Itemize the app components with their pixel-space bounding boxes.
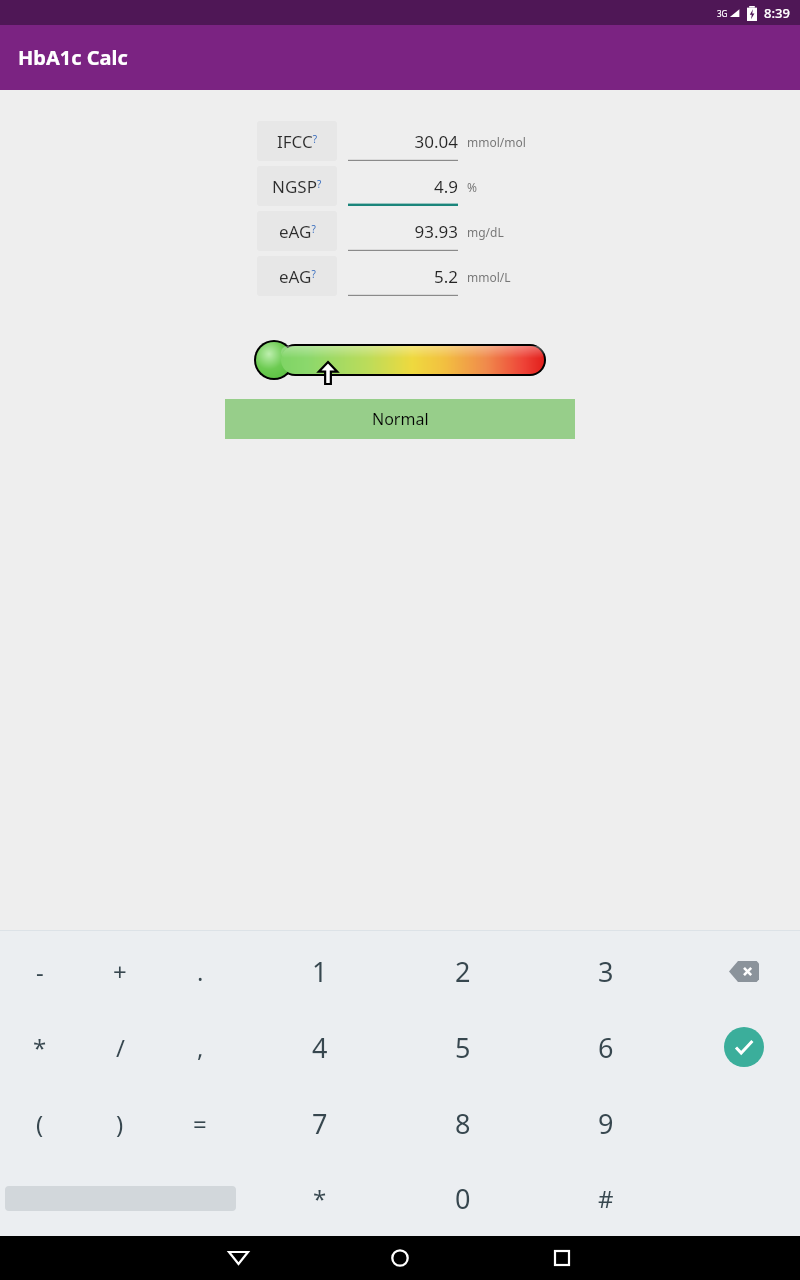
- button[interactable]: +: [82, 939, 158, 1003]
- staticText: 30.04: [414, 130, 458, 153]
- staticText: mmol/L: [467, 269, 511, 285]
- staticText: 9: [598, 1105, 614, 1142]
- staticText: -: [36, 955, 44, 988]
- staticText: %: [467, 179, 477, 195]
- staticText: *: [313, 1182, 327, 1215]
- staticText: 8: [455, 1105, 471, 1142]
- button[interactable]: *: [2, 1015, 78, 1079]
- staticText: 1: [312, 953, 328, 990]
- button[interactable]: Normal: [225, 399, 575, 439]
- button[interactable]: Home: [370, 1236, 430, 1280]
- button[interactable]: 5: [425, 1015, 501, 1079]
- staticText: 5.2: [433, 265, 458, 288]
- staticText: 3G: [717, 8, 728, 19]
- button[interactable]: /: [82, 1015, 158, 1079]
- staticText: 6: [598, 1029, 614, 1066]
- staticText: 8:39: [764, 4, 790, 22]
- staticText: 4: [312, 1029, 328, 1066]
- staticText: NGSP?: [272, 175, 322, 198]
- button[interactable]: 3: [568, 939, 644, 1003]
- staticText: mmol/mol: [467, 134, 526, 150]
- button[interactable]: 7: [282, 1091, 358, 1155]
- staticText: .: [197, 955, 204, 988]
- button[interactable]: Back: [208, 1236, 268, 1280]
- staticText: +: [113, 955, 127, 988]
- button[interactable]: eAG?: [257, 211, 337, 251]
- button[interactable]: =: [162, 1091, 238, 1155]
- staticText: #: [598, 1182, 614, 1215]
- staticText: HbA1c Calc: [18, 44, 128, 71]
- staticText: 2: [455, 953, 471, 990]
- staticText: 7: [312, 1105, 328, 1142]
- button[interactable]: IFCC?: [257, 121, 337, 161]
- staticText: =: [193, 1107, 207, 1140]
- button[interactable]: .: [162, 939, 238, 1003]
- button[interactable]: -: [2, 939, 78, 1003]
- button[interactable]: 2: [425, 939, 501, 1003]
- button[interactable]: (: [2, 1091, 78, 1155]
- staticText: Normal: [372, 408, 429, 430]
- staticText: ,: [197, 1031, 204, 1064]
- button[interactable]: ,: [162, 1015, 238, 1079]
- button[interactable]: NGSP?: [257, 166, 337, 206]
- button[interactable]: *: [282, 1166, 358, 1230]
- staticText: 5: [455, 1029, 471, 1066]
- button[interactable]: Recents: [532, 1236, 592, 1280]
- staticText: (: [36, 1107, 44, 1140]
- staticText: eAG?: [279, 220, 316, 243]
- button[interactable]: Backspace: [706, 939, 782, 1003]
- button[interactable]: ): [82, 1091, 158, 1155]
- staticText: 93.93: [414, 220, 458, 243]
- staticText: 3: [598, 953, 614, 990]
- button[interactable]: eAG?: [257, 256, 337, 296]
- staticText: /: [116, 1031, 125, 1064]
- button[interactable]: 8: [425, 1091, 501, 1155]
- staticText: mg/dL: [467, 224, 504, 240]
- staticText: IFCC?: [277, 130, 318, 153]
- staticText: eAG?: [279, 265, 316, 288]
- staticText: ): [116, 1107, 124, 1140]
- button[interactable]: 9: [568, 1091, 644, 1155]
- button[interactable]: Enter: [706, 1015, 782, 1079]
- staticText: *: [33, 1031, 47, 1064]
- button[interactable]: 1: [282, 939, 358, 1003]
- button[interactable]: 4: [282, 1015, 358, 1079]
- staticText: 4.9: [433, 175, 458, 198]
- button[interactable]: 6: [568, 1015, 644, 1079]
- staticText: 0: [455, 1180, 471, 1217]
- button[interactable]: #: [568, 1166, 644, 1230]
- button[interactable]: 0: [425, 1166, 501, 1230]
